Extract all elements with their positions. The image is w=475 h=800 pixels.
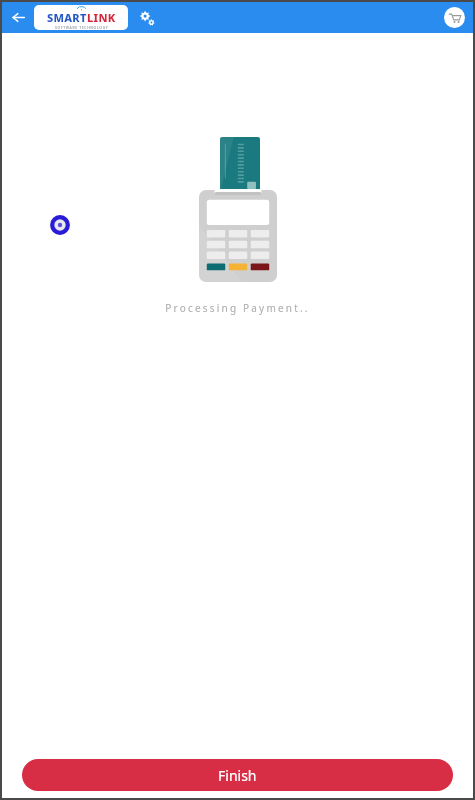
staticText: Processing Payment.. [165, 301, 310, 315]
button[interactable]: Cart [444, 7, 465, 28]
staticText: LINK [87, 10, 116, 25]
staticText: Finish [218, 766, 257, 785]
button[interactable]: Finish [22, 759, 453, 791]
button[interactable]: Settings [134, 5, 160, 31]
staticText: SOFTWARE TECHNOLOGY [55, 25, 109, 30]
staticText: SMART [47, 10, 87, 25]
button[interactable]: SMART [34, 5, 128, 30]
button[interactable]: Back [2, 2, 34, 33]
